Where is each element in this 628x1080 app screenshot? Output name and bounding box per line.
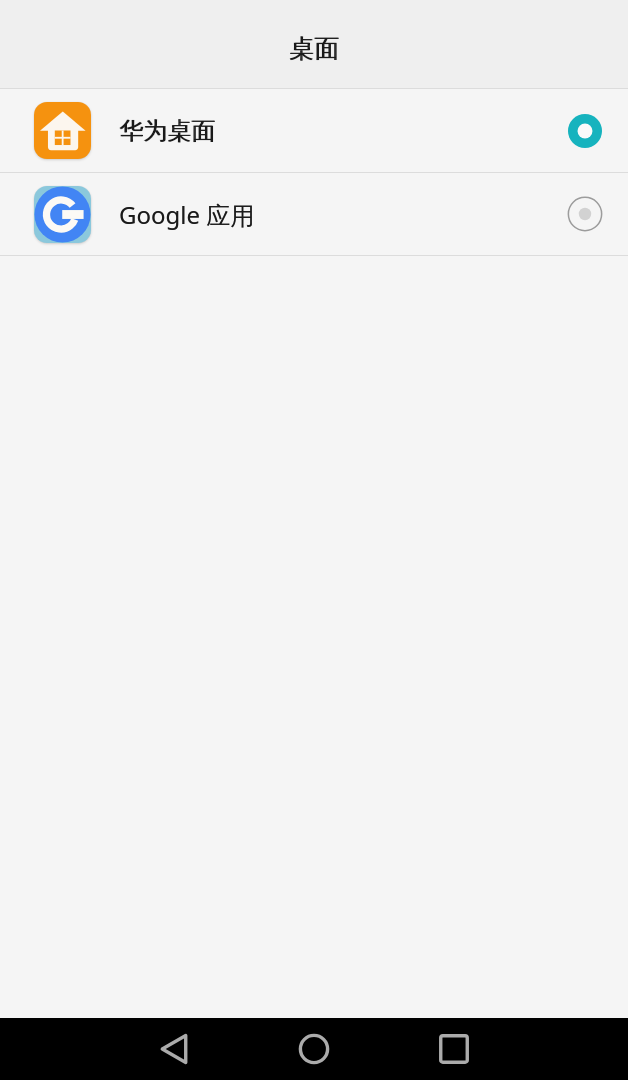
staticText: 华为桌面 [119,116,215,146]
button[interactable]: Google 应用 [0,173,628,255]
staticText: Google 应用 [119,198,255,231]
staticText: Google 应用 [119,198,255,231]
button[interactable]: Not selected [563,192,607,236]
button[interactable]: Back [139,1018,209,1080]
staticText: 桌面 [290,33,340,64]
button[interactable]: Selected [563,109,607,153]
button[interactable]: Recents [419,1018,489,1080]
button[interactable]: Home [279,1018,349,1080]
staticText: 华为桌面 [120,116,216,146]
staticText: 桌面 [289,33,339,64]
button[interactable]: 华为桌面 [0,89,628,172]
